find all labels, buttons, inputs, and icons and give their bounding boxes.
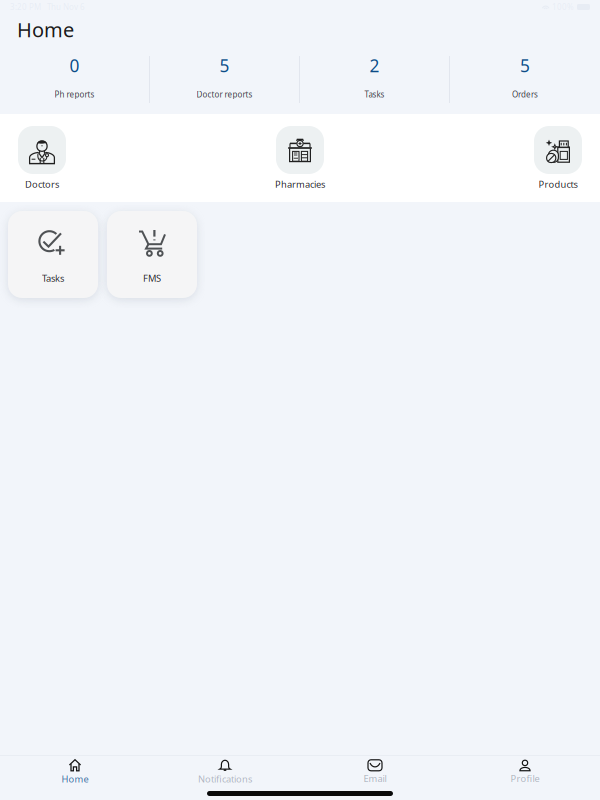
staticText: Doctor reports (196, 89, 252, 100)
staticText: Ph reports (54, 89, 94, 100)
staticText: Home (61, 773, 88, 785)
button[interactable]: Notifications (150, 753, 300, 787)
staticText: Tasks (42, 272, 64, 284)
button[interactable]: Email (300, 753, 450, 787)
staticText: 0 (69, 54, 79, 77)
staticText: Tasks (364, 89, 384, 100)
staticText: Notifications (198, 773, 252, 785)
button[interactable]: Doctors (18, 114, 66, 202)
button[interactable]: Profile (450, 753, 600, 787)
staticText: 5 (219, 54, 229, 77)
staticText: Products (538, 178, 577, 190)
staticText: 5 (520, 54, 530, 77)
staticText: Home (17, 16, 74, 43)
button[interactable]: Home (0, 753, 150, 787)
staticText: Orders (512, 89, 538, 100)
button[interactable]: Tasks (8, 211, 98, 298)
button[interactable]: Pharmacies (275, 114, 325, 202)
button[interactable]: FMS (107, 211, 197, 298)
staticText: FMS (143, 272, 161, 284)
button[interactable]: Products (534, 114, 582, 202)
staticText: Pharmacies (275, 178, 325, 190)
staticText: 2 (369, 54, 379, 77)
staticText: Doctors (25, 178, 59, 190)
staticText: Email (363, 772, 386, 785)
staticText: Profile (510, 772, 539, 785)
